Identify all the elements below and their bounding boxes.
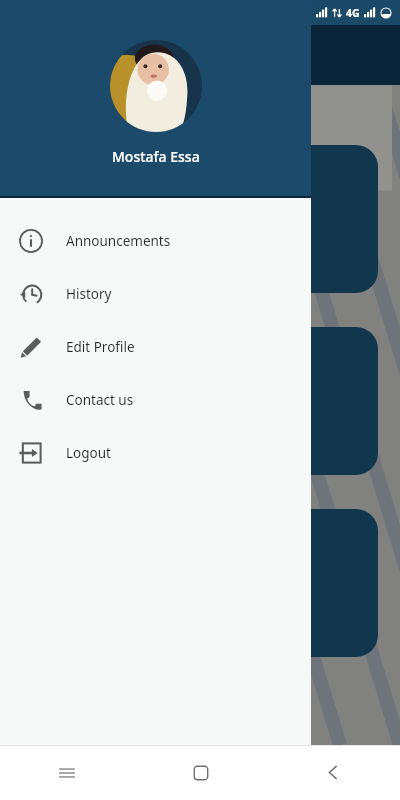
button[interactable]: Home — [134, 745, 267, 800]
button[interactable]: Back — [267, 745, 400, 800]
button[interactable] — [120, 145, 378, 293]
button[interactable]: Contact us — [0, 373, 311, 426]
button[interactable] — [120, 327, 378, 475]
button[interactable] — [0, 25, 400, 745]
staticText: Mostafa Essa — [112, 147, 200, 166]
staticText: 4G — [346, 6, 360, 20]
button[interactable]: Profile photo — [110, 40, 202, 132]
button[interactable]: Announcements — [0, 214, 311, 267]
button[interactable]: History — [0, 267, 311, 320]
staticText: Edit Profile — [66, 338, 135, 356]
staticText: Contact us — [66, 391, 134, 409]
button[interactable]: Edit Profile — [0, 320, 311, 373]
button[interactable] — [120, 509, 378, 657]
button[interactable]: Logout — [0, 426, 311, 479]
staticText: Announcements — [66, 232, 171, 250]
button[interactable]: Recent apps — [0, 745, 134, 800]
staticText: Logout — [66, 444, 111, 462]
staticText: History — [66, 285, 112, 303]
